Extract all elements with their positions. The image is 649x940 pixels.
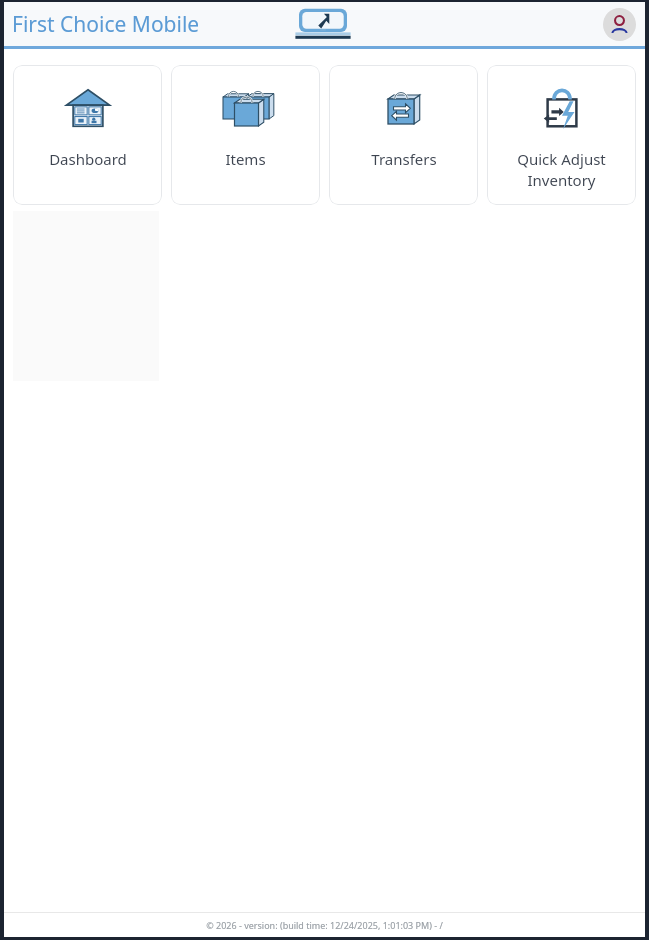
staticText: Items [225, 149, 266, 169]
staticText: Quick Adjust Inventory [517, 149, 606, 191]
staticText: Transfers [371, 149, 437, 169]
staticText: First Choice Mobile [12, 10, 200, 39]
button[interactable]: Quick Adjust Inventory [487, 65, 636, 205]
button[interactable]: Home logo [293, 4, 353, 44]
button[interactable]: Transfers [329, 65, 478, 205]
button[interactable]: Items [171, 65, 320, 205]
button[interactable]: Account [603, 8, 636, 41]
button[interactable]: Dashboard [13, 65, 162, 205]
staticText: © 2026 - version: (build time: 12/24/202… [206, 919, 443, 931]
staticText: Dashboard [49, 149, 127, 169]
